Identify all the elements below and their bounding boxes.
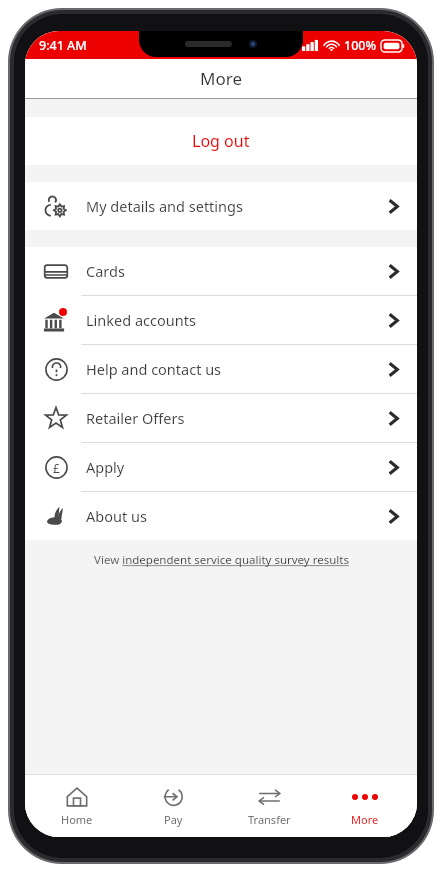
button[interactable]: Retailer Offers [25,394,417,442]
staticText: About us [86,506,147,526]
staticText: My details and settings [86,196,243,216]
staticText: 100% [344,37,377,54]
button[interactable]: Home [33,780,121,833]
staticText: Transfer [248,812,291,827]
button[interactable]: Linked accounts [25,296,417,344]
button[interactable]: Log out [25,117,417,165]
button[interactable]: Pay [129,780,217,833]
button[interactable]: More [321,780,409,833]
staticText: Help and contact us [86,359,222,379]
staticText: Log out [192,130,250,152]
button[interactable]: Help and contact us [25,345,417,393]
staticText: 9:41 AM [39,37,87,54]
staticText: Cards [86,261,125,281]
staticText: Linked accounts [86,310,196,330]
staticText: Home [61,812,93,827]
button[interactable]: £ [25,443,417,491]
staticText: Pay [164,812,183,827]
button[interactable]: Cards [25,247,417,295]
staticText: £ [53,460,60,476]
staticText: More [200,67,242,90]
button[interactable]: About us [25,492,417,540]
staticText: Apply [86,457,125,477]
staticText: View independent service quality survey … [94,552,349,568]
staticText: Retailer Offers [86,408,185,428]
button[interactable]: My details and settings [25,182,417,230]
button[interactable]: Transfer [225,780,313,833]
staticText: More [351,812,379,827]
